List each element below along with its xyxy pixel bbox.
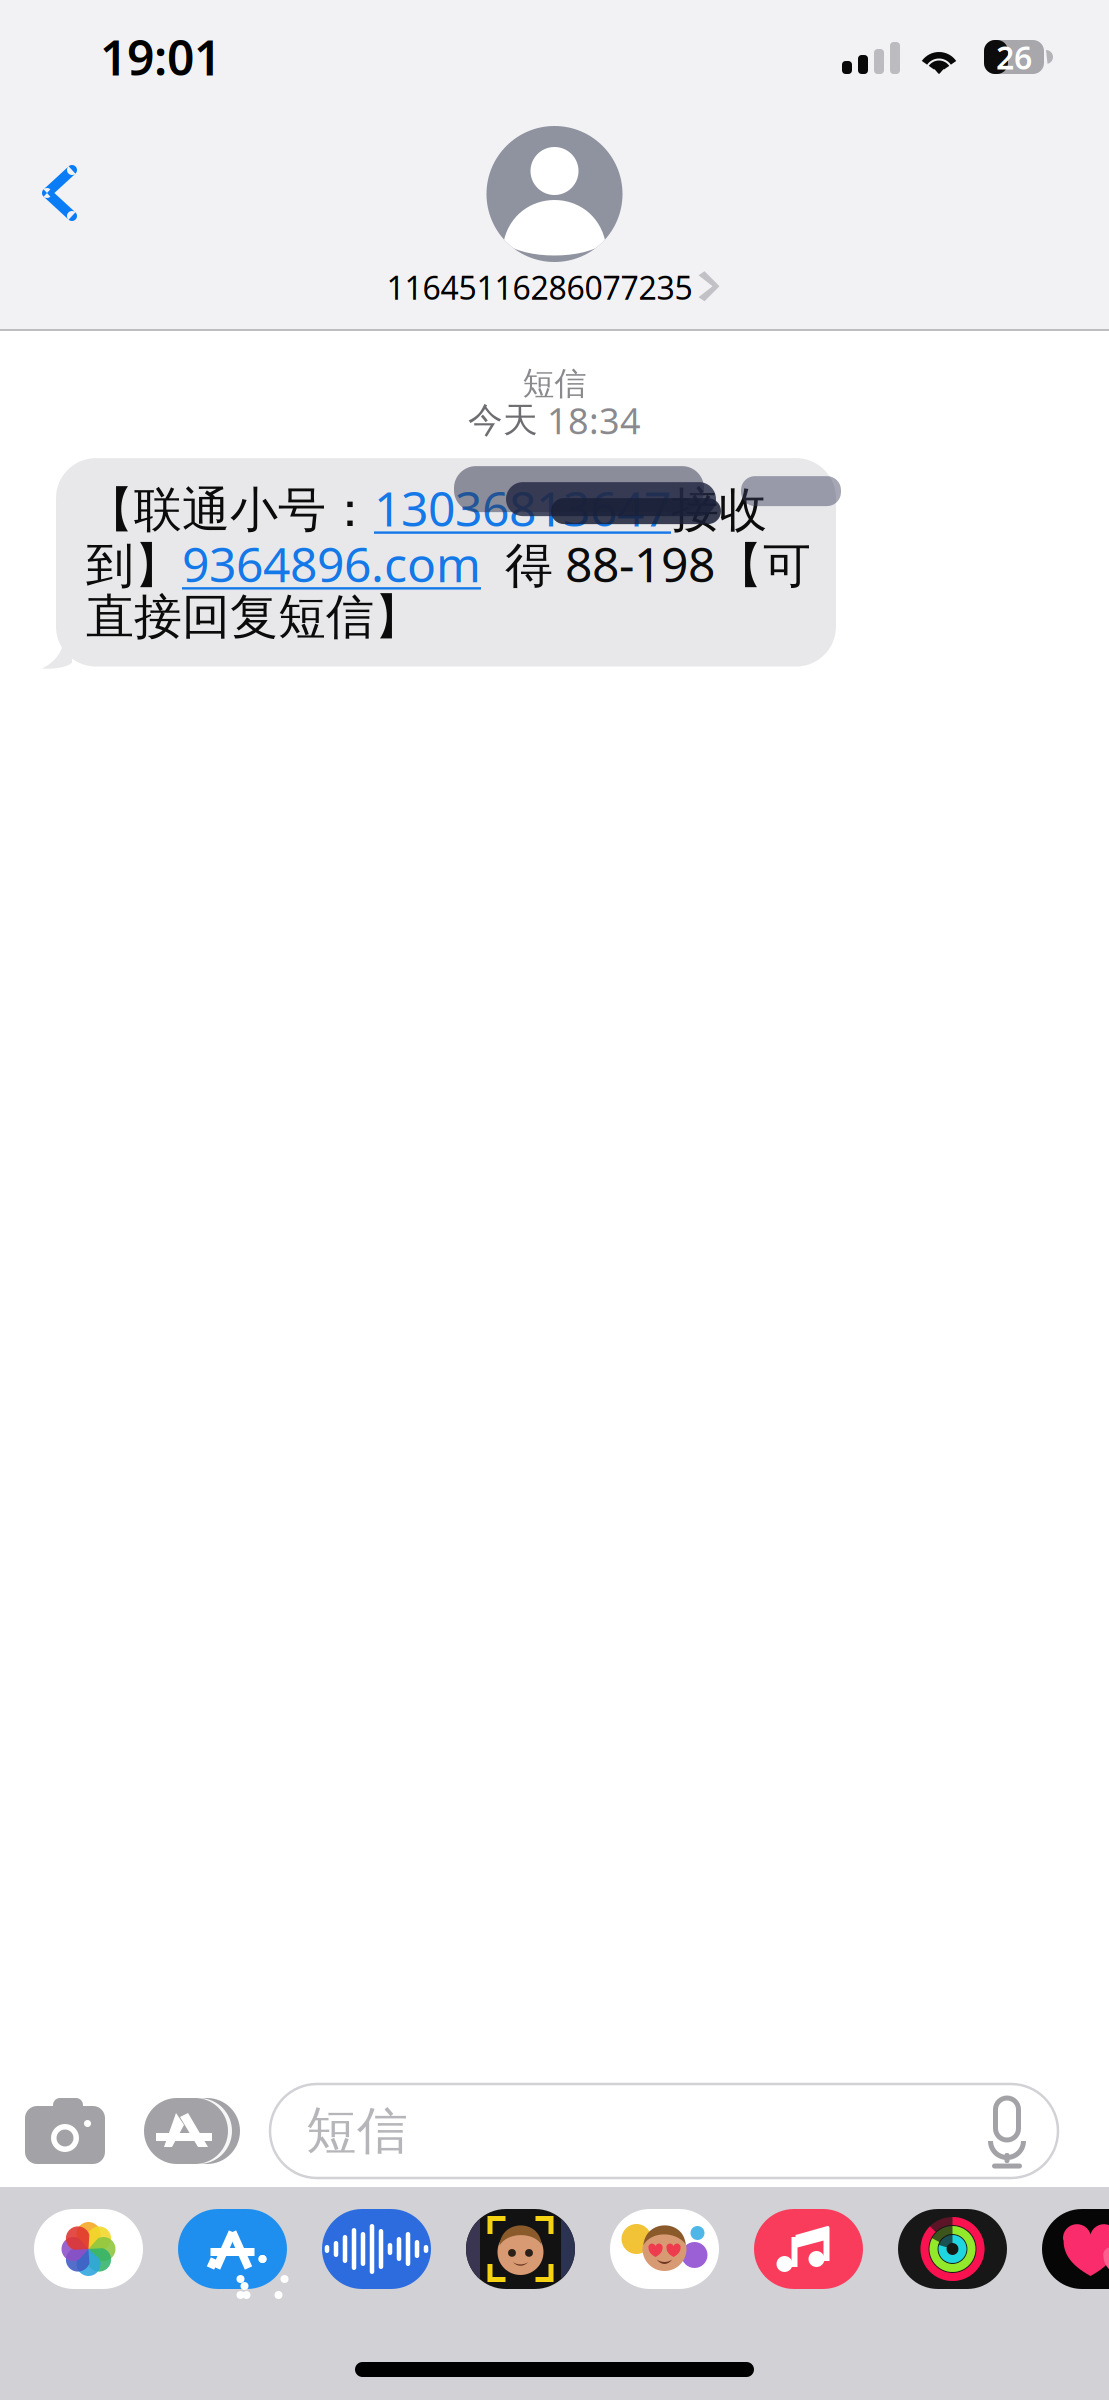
staticText: 短信	[522, 364, 586, 403]
button[interactable]: Music	[754, 2209, 863, 2289]
staticText: 【联通小号：13036813647接收到】9364896.com 得 88-19…	[86, 476, 811, 646]
button[interactable]: Audio	[322, 2209, 431, 2289]
button[interactable]: Fitness	[898, 2209, 1007, 2289]
staticText: 26	[996, 36, 1032, 78]
button[interactable]: Photos	[34, 2209, 143, 2289]
staticText: 今天	[468, 399, 538, 441]
button[interactable]: Apps	[130, 2084, 250, 2178]
button[interactable]: 短信	[270, 2084, 1058, 2178]
button[interactable]: Stickers	[610, 2209, 719, 2289]
button[interactable]: Back	[8, 147, 112, 241]
staticText: 18:34	[547, 396, 641, 444]
staticText: 19:01	[100, 25, 221, 89]
staticText: 11645116286077235	[386, 266, 692, 308]
staticText: 短信	[306, 2100, 408, 2162]
button[interactable]: App Store	[178, 2209, 287, 2289]
button[interactable]: Camera	[0, 2084, 130, 2178]
button[interactable]: Memoji	[466, 2209, 575, 2289]
button[interactable]: Health	[1042, 2209, 1109, 2289]
